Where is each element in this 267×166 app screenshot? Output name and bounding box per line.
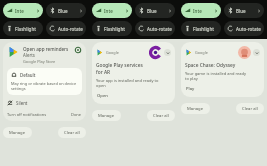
button[interactable]: Clear all: [58, 127, 86, 138]
button[interactable]: Manage: [3, 127, 32, 138]
button[interactable]: Clear all: [147, 110, 175, 121]
staticText: Clear all: [242, 106, 258, 112]
button[interactable]: Expand: [253, 49, 260, 56]
staticText: Clear all: [153, 113, 169, 119]
button[interactable]: Bluetooth: [135, 3, 175, 18]
staticText: Bluetooth: [147, 8, 157, 14]
staticText: Default: [20, 72, 36, 78]
staticText: Flashlight: [193, 26, 214, 32]
button[interactable]: Turn off notifications: [7, 112, 47, 117]
button[interactable]: Internet: [3, 3, 43, 18]
staticText: Manage: [98, 113, 115, 119]
button[interactable]: Internet: [181, 3, 221, 18]
button[interactable]: Manage: [92, 110, 121, 121]
button[interactable]: Flashlight: [3, 21, 43, 36]
staticText: Google Play services for AR: [96, 62, 150, 76]
staticText: Auto-rotate: [236, 26, 261, 32]
staticText: Manage: [187, 106, 204, 112]
staticText: Auto-rotate: [58, 26, 83, 32]
button[interactable]: Settings: [74, 46, 82, 54]
staticText: Google Play Store • now: [106, 50, 127, 55]
staticText: Clear all: [64, 130, 80, 136]
staticText: Auto-rotate: [147, 26, 172, 32]
staticText: Flashlight: [104, 26, 125, 32]
button[interactable]: Done: [71, 112, 82, 117]
staticText: Alerts: [23, 52, 35, 58]
button[interactable]: Play: [185, 85, 196, 93]
button[interactable]: Flashlight: [92, 21, 132, 36]
button[interactable]: Clear all: [236, 103, 264, 114]
staticText: Manage: [9, 130, 26, 136]
staticText: Internet: [193, 8, 203, 14]
button[interactable]: Bluetooth: [224, 3, 264, 18]
staticText: Google Play Store • 1m: [195, 50, 216, 55]
staticText: Bluetooth: [236, 8, 246, 14]
button[interactable]: Bluetooth: [46, 3, 86, 18]
button[interactable]: Google Play Store • 1m: [181, 42, 264, 97]
button[interactable]: Expand: [164, 49, 171, 56]
button[interactable]: Internet: [92, 3, 132, 18]
button[interactable]: Auto-rotate: [224, 21, 264, 36]
staticText: Internet: [15, 8, 25, 14]
staticText: Open app reminders: [23, 46, 69, 52]
button[interactable]: Open: [96, 92, 109, 100]
button[interactable]: Default: [7, 68, 82, 95]
staticText: May ring or vibrate based on device sett…: [11, 81, 78, 91]
button[interactable]: Auto-rotate: [46, 21, 86, 36]
button[interactable]: Auto-rotate: [135, 21, 175, 36]
button[interactable]: Silent: [7, 99, 82, 107]
staticText: Your app is installed and ready to open: [96, 78, 161, 88]
button[interactable]: Google Play Store • now: [92, 42, 175, 104]
button[interactable]: Manage: [181, 103, 210, 114]
staticText: Google Play Store: [23, 59, 56, 64]
staticText: Internet: [104, 8, 114, 14]
staticText: Silent: [16, 100, 28, 106]
staticText: Bluetooth: [58, 8, 68, 14]
staticText: Your game is installed and ready to play: [185, 71, 250, 81]
button[interactable]: Flashlight: [181, 21, 221, 36]
staticText: Space Chase: Odyssey: [185, 62, 239, 69]
staticText: Flashlight: [15, 26, 36, 32]
